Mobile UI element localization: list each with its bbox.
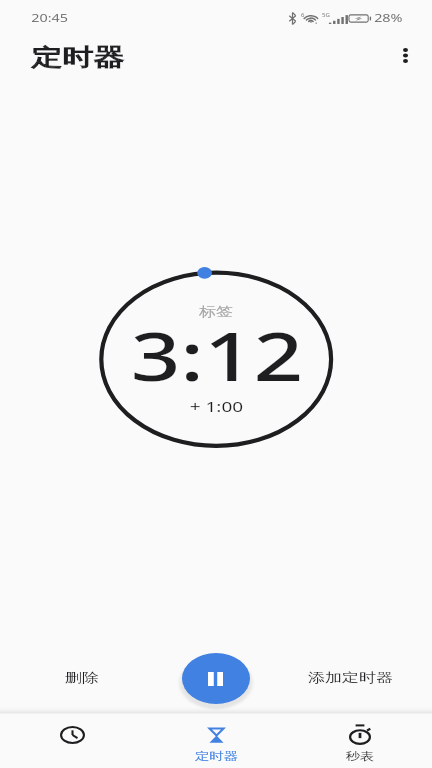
- staticText: + 1:00: [190, 396, 243, 416]
- button[interactable]: Pause timer: [182, 653, 250, 704]
- button[interactable]: More options: [389, 39, 421, 71]
- button[interactable]: 添加定时器: [318, 669, 383, 685]
- button[interactable]: Alarm: [0, 714, 144, 768]
- staticText: 5G: [322, 11, 330, 19]
- staticText: 定时器: [31, 42, 126, 71]
- staticText: 删除: [65, 669, 99, 685]
- staticText: 定时器: [195, 749, 238, 763]
- staticText: 3:12: [131, 309, 304, 401]
- staticText: 6: [301, 11, 305, 19]
- button[interactable]: 秒表: [288, 714, 432, 768]
- button[interactable]: 删除: [69, 669, 95, 685]
- button[interactable]: 定时器: [144, 714, 288, 768]
- staticText: 秒表: [346, 749, 374, 763]
- staticText: 添加定时器: [308, 669, 393, 685]
- staticText: 20:45: [31, 10, 69, 26]
- staticText: 标签: [199, 303, 233, 319]
- staticText: 28%: [374, 10, 403, 26]
- staticText: 定时器: [31, 42, 126, 71]
